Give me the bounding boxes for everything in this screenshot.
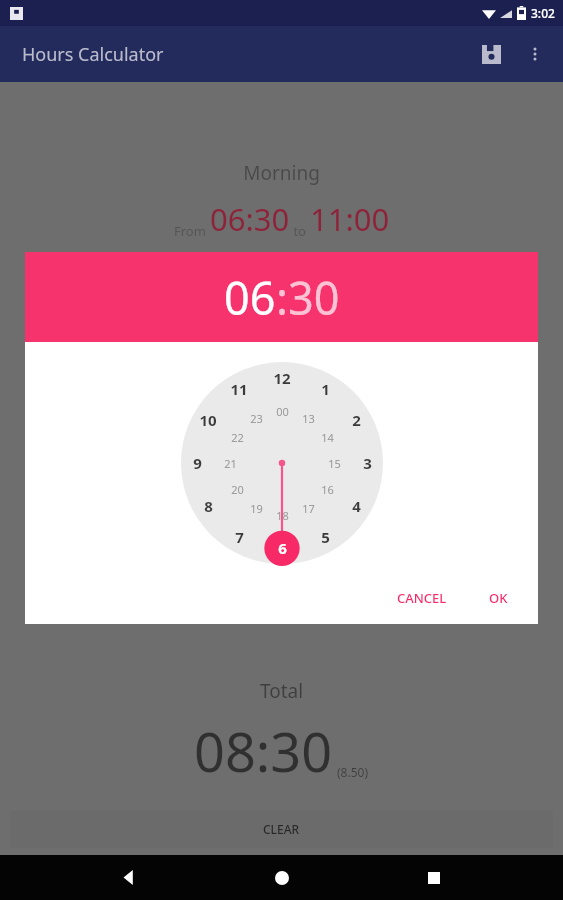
- staticText: (8.50): [337, 764, 369, 780]
- staticText: 7: [235, 527, 244, 547]
- staticText: Hours Calculator: [22, 42, 164, 67]
- button[interactable]: 12: [181, 362, 383, 564]
- button[interactable]: 06: [224, 267, 276, 328]
- button[interactable]: Back: [105, 855, 153, 900]
- staticText: 13: [302, 411, 315, 426]
- staticText: 12: [273, 368, 291, 388]
- staticText: CANCEL: [397, 589, 447, 607]
- button[interactable]: CLEAR: [10, 810, 553, 848]
- staticText: Total: [0, 678, 563, 704]
- staticText: 2: [352, 410, 361, 430]
- button[interactable]: :30: [276, 267, 340, 328]
- staticText: 19: [250, 501, 263, 516]
- staticText: 08:30: [194, 714, 333, 788]
- staticText: 1: [321, 379, 330, 399]
- staticText: 15: [328, 456, 341, 471]
- staticText: OK: [489, 589, 508, 607]
- staticText: 20: [231, 482, 244, 497]
- staticText: 16: [321, 482, 334, 497]
- staticText: 11:00: [310, 198, 390, 240]
- staticText: 3: [363, 453, 372, 473]
- staticText: 23: [250, 411, 263, 426]
- button[interactable]: Home: [258, 855, 306, 900]
- staticText: CLEAR: [263, 821, 300, 837]
- staticText: 9: [193, 453, 202, 473]
- staticText: 10: [199, 410, 217, 430]
- button[interactable]: Recents: [410, 855, 458, 900]
- button[interactable]: OK: [479, 581, 518, 615]
- staticText: 17: [302, 501, 315, 516]
- button[interactable]: Save: [469, 32, 513, 76]
- staticText: 5: [321, 527, 330, 547]
- staticText: 14: [321, 430, 334, 445]
- staticText: 8: [204, 496, 213, 516]
- staticText: 4: [352, 496, 361, 516]
- staticText: 00: [276, 404, 289, 419]
- staticText: 3:02: [531, 5, 555, 21]
- staticText: 06:30: [210, 198, 290, 240]
- staticText: 18: [276, 508, 289, 523]
- button[interactable]: More options: [513, 32, 557, 76]
- button[interactable]: CANCEL: [387, 581, 457, 615]
- staticText: to: [290, 222, 310, 240]
- staticText: 6: [278, 538, 287, 558]
- staticText: 11: [230, 379, 248, 399]
- staticText: 21: [224, 456, 237, 471]
- staticText: Morning: [0, 160, 563, 186]
- staticText: From: [174, 222, 210, 240]
- staticText: 22: [231, 430, 244, 445]
